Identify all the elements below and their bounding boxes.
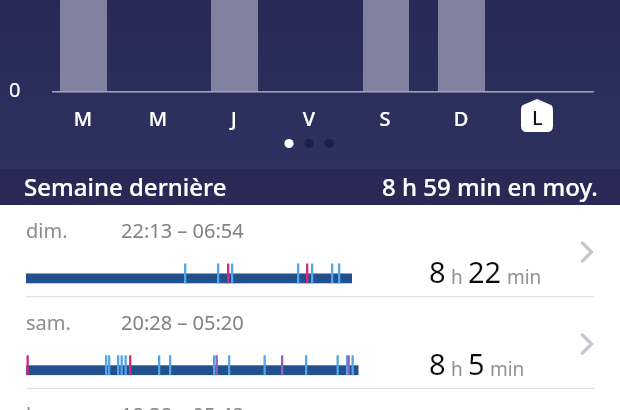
button[interactable]: M <box>59 0 107 134</box>
staticText: h <box>446 264 468 290</box>
staticText: 8 <box>429 344 446 383</box>
staticText: V <box>295 105 323 132</box>
staticText: M <box>144 105 172 132</box>
staticText: sam. <box>26 309 71 336</box>
button[interactable]: J <box>210 0 258 134</box>
button[interactable]: V <box>285 0 333 134</box>
staticText: 8 <box>429 252 446 291</box>
button[interactable]: S <box>361 0 409 134</box>
button[interactable]: D <box>437 0 485 134</box>
staticText: J <box>220 105 248 132</box>
staticText: D <box>447 105 475 132</box>
staticText: Semaine dernière <box>24 170 227 203</box>
staticText: 8 h 59 min en moy. <box>382 170 598 203</box>
other: Voir le détail <box>578 331 596 357</box>
staticText: 22 <box>468 252 502 291</box>
staticText: 22:13 – 06:54 <box>121 217 244 244</box>
staticText: M <box>69 105 97 132</box>
other: Voir le détail <box>578 239 596 265</box>
button[interactable]: Semaine dernière <box>0 169 620 205</box>
button[interactable]: Lundi <box>521 99 553 133</box>
button[interactable]: lun. <box>0 389 620 410</box>
staticText: dim. <box>26 217 68 244</box>
staticText: h <box>446 356 468 382</box>
staticText: lun. <box>26 401 62 410</box>
button[interactable]: M <box>134 0 182 134</box>
staticText: L <box>532 104 543 131</box>
staticText: 5 <box>468 344 485 383</box>
staticText: 0 <box>9 76 21 103</box>
staticText: min <box>502 264 542 290</box>
staticText: 18:38 – 05:48 <box>121 401 244 410</box>
staticText: S <box>371 105 399 132</box>
staticText: 20:28 – 05:20 <box>121 309 244 336</box>
button[interactable]: sam. <box>0 297 620 389</box>
staticText: min <box>485 356 525 382</box>
button[interactable]: dim. <box>0 205 620 297</box>
